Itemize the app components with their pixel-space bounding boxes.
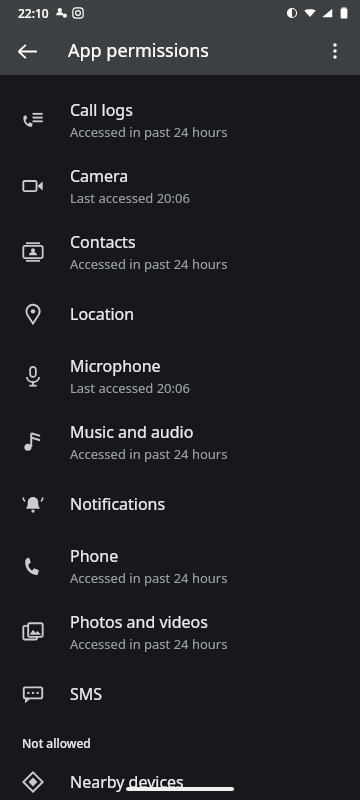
button[interactable]: Microphone bbox=[0, 343, 360, 409]
button[interactable]: Camera bbox=[0, 153, 360, 219]
staticText: Not allowed bbox=[22, 735, 91, 751]
staticText: Photos and videos bbox=[70, 611, 208, 633]
staticText: Nearby devices bbox=[70, 771, 184, 793]
staticText: Phone bbox=[70, 545, 119, 567]
button[interactable]: Back bbox=[6, 30, 48, 72]
staticText: Call logs bbox=[70, 99, 133, 121]
staticText: Last accessed 20:06 bbox=[70, 379, 190, 397]
staticText: Accessed in past 24 hours bbox=[70, 255, 228, 273]
staticText: SMS bbox=[70, 683, 103, 705]
button[interactable]: Photos and videos bbox=[0, 599, 360, 665]
staticText: 22:10 bbox=[18, 5, 49, 21]
button[interactable]: Call logs bbox=[0, 87, 360, 153]
staticText: Camera bbox=[70, 165, 129, 187]
staticText: Accessed in past 24 hours bbox=[70, 123, 228, 141]
button[interactable]: Contacts bbox=[0, 219, 360, 285]
staticText: App permissions bbox=[68, 38, 209, 63]
button[interactable]: More options bbox=[314, 30, 356, 72]
staticText: Accessed in past 24 hours bbox=[70, 569, 228, 587]
button[interactable]: Notifications bbox=[0, 475, 360, 533]
staticText: Notifications bbox=[70, 493, 166, 515]
staticText: Accessed in past 24 hours bbox=[70, 635, 228, 653]
staticText: Accessed in past 24 hours bbox=[70, 445, 228, 463]
button[interactable]: Location bbox=[0, 285, 360, 343]
button[interactable]: Nearby devices bbox=[0, 763, 360, 800]
staticText: Microphone bbox=[70, 355, 161, 377]
button[interactable]: Phone bbox=[0, 533, 360, 599]
staticText: Last accessed 20:06 bbox=[70, 189, 190, 207]
button[interactable]: Music and audio bbox=[0, 409, 360, 475]
staticText: Music and audio bbox=[70, 421, 194, 443]
staticText: Location bbox=[70, 303, 135, 325]
staticText: Contacts bbox=[70, 231, 136, 253]
button[interactable]: SMS bbox=[0, 665, 360, 723]
